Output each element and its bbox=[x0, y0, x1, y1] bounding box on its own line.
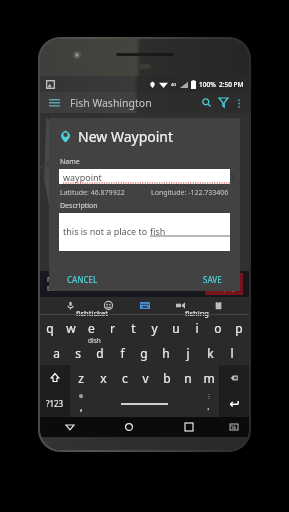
button[interactable]: Home bbox=[99, 417, 159, 437]
staticText: SAVE bbox=[203, 274, 222, 285]
staticText: m bbox=[203, 370, 215, 386]
button[interactable]: r bbox=[102, 315, 123, 340]
staticText: x bbox=[100, 370, 107, 386]
button[interactable]: Open navigation menu bbox=[45, 92, 63, 113]
button[interactable]: waypoint bbox=[59, 169, 230, 184]
staticText: z bbox=[78, 370, 84, 386]
button[interactable]: Search bbox=[198, 94, 215, 111]
staticText: dish bbox=[88, 336, 101, 345]
button[interactable]: y bbox=[144, 315, 165, 340]
button[interactable]: CANCEL bbox=[63, 270, 102, 289]
button[interactable]: . bbox=[197, 390, 219, 417]
button[interactable]: ?123 bbox=[40, 390, 70, 417]
staticText: n bbox=[184, 370, 192, 386]
button[interactable]: o bbox=[207, 315, 228, 340]
button[interactable]: j bbox=[177, 340, 199, 365]
button[interactable]: u bbox=[165, 315, 186, 340]
staticText: this is not a place to bbox=[63, 225, 150, 237]
button[interactable]: m bbox=[198, 365, 219, 390]
staticText: Nice job! You're displaying a 320 x 50 t… bbox=[47, 275, 205, 293]
button[interactable]: Voice input bbox=[64, 299, 77, 312]
staticText: q bbox=[46, 320, 54, 336]
staticText: fishing bbox=[185, 308, 209, 318]
button[interactable]: p bbox=[228, 315, 249, 340]
button[interactable]: More options bbox=[232, 96, 246, 110]
staticText: j bbox=[186, 345, 190, 361]
staticText: w bbox=[66, 320, 76, 336]
staticText: AdMob by Google bbox=[211, 288, 237, 292]
button[interactable]: h bbox=[155, 340, 177, 365]
staticText: Fish Washington bbox=[70, 96, 152, 110]
button[interactable]: l bbox=[221, 340, 243, 365]
button[interactable]: c bbox=[114, 365, 135, 390]
button[interactable]: s bbox=[67, 340, 89, 365]
button[interactable]: x bbox=[92, 365, 114, 390]
button[interactable]: v bbox=[135, 365, 156, 390]
staticText: Name bbox=[60, 157, 80, 167]
staticText: Longitude: -122.733406 bbox=[151, 188, 229, 198]
button[interactable]: k bbox=[199, 340, 221, 365]
button[interactable]: b bbox=[156, 365, 177, 390]
button[interactable]: SAVE bbox=[199, 270, 226, 289]
staticText: 100% bbox=[199, 80, 216, 89]
staticText: . bbox=[207, 399, 210, 413]
staticText: a bbox=[53, 345, 60, 361]
button[interactable]: z bbox=[70, 365, 92, 390]
staticText: y bbox=[151, 320, 158, 336]
button[interactable]: Switch keyboard bbox=[219, 417, 249, 437]
button[interactable]: f bbox=[111, 340, 133, 365]
staticText: 4G bbox=[171, 82, 177, 87]
staticText: Description bbox=[60, 201, 98, 211]
button[interactable]: Emoji bbox=[102, 299, 115, 312]
staticText: p bbox=[235, 320, 243, 336]
button[interactable]: , bbox=[70, 390, 92, 417]
button[interactable]: Recent apps bbox=[159, 417, 219, 437]
button[interactable]: i bbox=[186, 315, 207, 340]
button[interactable]: q bbox=[40, 315, 60, 340]
button[interactable]: Back bbox=[40, 417, 99, 437]
staticText: s bbox=[75, 345, 81, 361]
staticText: waypoint bbox=[63, 171, 102, 183]
staticText: o bbox=[214, 320, 222, 336]
button[interactable]: Nice job! You're displaying a 320 x 50 t… bbox=[40, 271, 249, 297]
button[interactable]: Shift bbox=[40, 365, 70, 390]
button[interactable]: d bbox=[89, 340, 111, 365]
staticText: , bbox=[80, 400, 83, 414]
staticText: d bbox=[96, 345, 104, 361]
staticText: i bbox=[195, 320, 199, 336]
staticText: k bbox=[207, 345, 214, 361]
staticText: h bbox=[162, 345, 170, 361]
button[interactable]: e bbox=[81, 315, 102, 340]
button[interactable]: Clipboard bbox=[212, 299, 225, 312]
staticText: ?123 bbox=[46, 398, 64, 409]
staticText: f bbox=[120, 345, 125, 361]
button[interactable]: this is not a place to bbox=[59, 213, 230, 251]
button[interactable]: a bbox=[46, 340, 67, 365]
button[interactable]: fishing bbox=[185, 308, 209, 318]
button[interactable]: Space bbox=[92, 390, 197, 417]
staticText: c bbox=[122, 370, 128, 386]
staticText: r bbox=[110, 320, 115, 336]
button[interactable]: Keyboard settings bbox=[139, 300, 150, 311]
button[interactable]: fishticket bbox=[76, 308, 108, 318]
button[interactable]: Filter bbox=[215, 94, 232, 111]
staticText: u bbox=[172, 320, 180, 336]
staticText: 2:50 PM bbox=[219, 80, 244, 89]
staticText: Latitude: 46.879922 bbox=[60, 188, 125, 198]
button[interactable]: t bbox=[123, 315, 144, 340]
button[interactable]: Backspace bbox=[219, 365, 249, 390]
button[interactable]: g bbox=[133, 340, 155, 365]
staticText: New Waypoint bbox=[78, 127, 174, 146]
button[interactable]: w bbox=[60, 315, 81, 340]
staticText: fish bbox=[150, 225, 166, 237]
button[interactable]: Sticker bbox=[174, 299, 187, 312]
staticText: g bbox=[140, 345, 148, 361]
staticText: b bbox=[163, 370, 171, 386]
button[interactable]: Enter bbox=[219, 390, 249, 417]
staticText: A bbox=[221, 276, 228, 288]
staticText: e bbox=[88, 320, 95, 336]
staticText: l bbox=[230, 345, 234, 361]
staticText: t bbox=[131, 320, 136, 336]
staticText: fishticket bbox=[76, 308, 108, 318]
button[interactable]: n bbox=[177, 365, 198, 390]
